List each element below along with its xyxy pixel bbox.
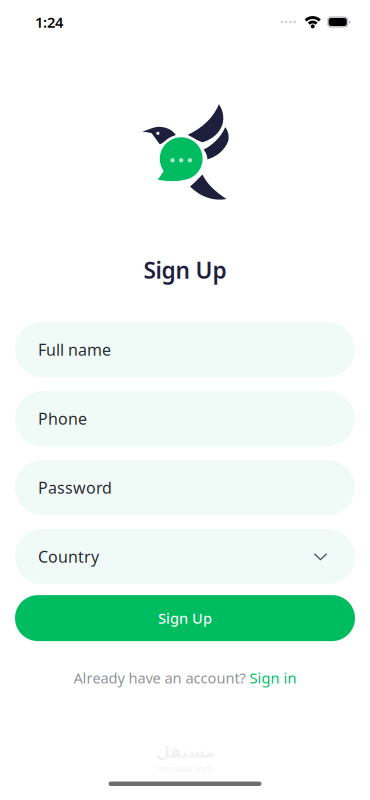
button[interactable]: Password: [15, 460, 355, 515]
staticText: Phone: [38, 408, 87, 429]
staticText: 1:24: [35, 12, 63, 32]
staticText: Password: [38, 477, 112, 498]
button[interactable]: Sign Up: [15, 595, 355, 641]
button[interactable]: Phone: [15, 391, 355, 446]
staticText: Country: [38, 546, 99, 567]
staticText: Already have an account?: [73, 668, 245, 688]
staticText: mostaql.com: [156, 762, 213, 774]
staticText: Sign Up: [158, 608, 212, 628]
staticText: Full name: [38, 339, 111, 360]
button[interactable]: Sign in: [249, 668, 296, 688]
staticText: مستقل: [155, 743, 214, 761]
staticText: Sign in: [249, 668, 296, 688]
button[interactable]: Full name: [15, 322, 355, 377]
staticText: Sign Up: [143, 255, 226, 285]
button[interactable]: Country: [15, 529, 355, 584]
